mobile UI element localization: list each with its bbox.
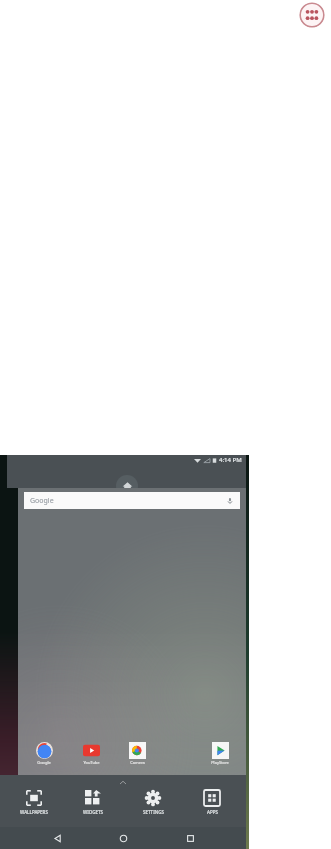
staticText: YouTube: [83, 760, 100, 765]
button[interactable]: SETTINGS: [127, 788, 179, 816]
button[interactable]: APPS: [186, 788, 238, 816]
button[interactable]: WIDGETS: [67, 788, 119, 816]
other: Voice search: [226, 497, 234, 505]
button[interactable]: PlayStore: [204, 742, 236, 765]
button[interactable]: WALLPAPERS: [8, 788, 60, 816]
button[interactable]: Google: [28, 742, 60, 765]
button[interactable]: YouTube: [75, 742, 107, 765]
button[interactable]: Back: [47, 828, 67, 848]
staticText: SETTINGS: [143, 809, 164, 815]
button[interactable]: Camera: [121, 742, 153, 765]
button[interactable]: Home: [113, 828, 133, 848]
staticText: Google: [30, 496, 54, 506]
button[interactable]: Recents: [180, 828, 200, 848]
staticText: APPS: [207, 809, 218, 815]
staticText: Google: [37, 760, 51, 765]
button[interactable]: Apps: [299, 2, 325, 28]
staticText: PlayStore: [211, 760, 229, 765]
button[interactable]: Google: [24, 492, 240, 509]
staticText: Camera: [130, 760, 145, 765]
staticText: 4:14 PM: [219, 456, 242, 464]
button[interactable]: Home screen: [116, 475, 138, 497]
staticText: WALLPAPERS: [20, 809, 48, 815]
staticText: WIDGETS: [83, 809, 103, 815]
